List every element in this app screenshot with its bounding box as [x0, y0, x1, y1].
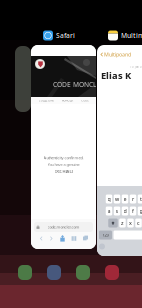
staticText: You have a genuine	[47, 162, 79, 167]
staticText: MONCLER	[61, 99, 73, 102]
staticText: a	[107, 207, 110, 215]
staticText: Authenticity confirmed.	[43, 155, 83, 160]
staticText: CODE	[81, 99, 88, 102]
staticText: 10 Jan 09:42	[130, 65, 142, 69]
staticText: x	[129, 219, 132, 227]
staticText: g	[139, 207, 142, 215]
staticText: e	[123, 195, 126, 203]
staticText: d	[123, 207, 126, 215]
button[interactable]: Forward	[49, 235, 54, 242]
staticText: COLLEZIONI	[39, 99, 54, 102]
staticText: r	[132, 195, 134, 203]
button[interactable]: Multimo	[97, 30, 142, 256]
staticText: 123	[102, 232, 108, 238]
staticText: s	[115, 207, 118, 215]
button[interactable]: Safari	[31, 30, 96, 249]
staticText: Multipoand	[104, 51, 131, 58]
staticText: Safari	[56, 31, 75, 40]
staticText: Multimo	[121, 31, 142, 40]
staticText: code.moncler.com	[47, 224, 79, 230]
staticText: f	[132, 207, 134, 215]
button[interactable]: Back	[38, 235, 43, 242]
staticText: c	[137, 219, 140, 227]
staticText: w	[115, 195, 119, 203]
staticText: OCCHIALI	[54, 169, 72, 174]
button[interactable]: Bookmarks	[71, 235, 77, 242]
button[interactable]: Share	[59, 235, 65, 242]
staticText: z	[121, 219, 124, 227]
staticText: q	[107, 195, 110, 203]
button[interactable]: Tabs	[82, 235, 88, 242]
staticText: CODE MONCLER	[53, 80, 104, 89]
staticText: t	[140, 195, 142, 203]
staticText: Elias K	[101, 69, 131, 82]
